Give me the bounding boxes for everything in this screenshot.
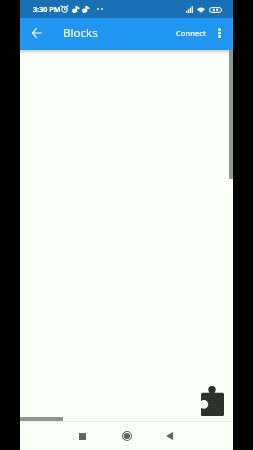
staticText: 3:30 PM <box>33 4 61 14</box>
button[interactable]: Connect <box>172 23 210 43</box>
button[interactable]: Back <box>157 424 181 448</box>
button[interactable]: Home <box>115 424 139 448</box>
button[interactable]: Recent apps <box>70 424 94 448</box>
button[interactable]: More options <box>207 21 231 45</box>
staticText: Connect <box>176 28 206 38</box>
staticText: Blocks <box>63 25 98 41</box>
button[interactable]: Navigate up <box>25 21 49 45</box>
